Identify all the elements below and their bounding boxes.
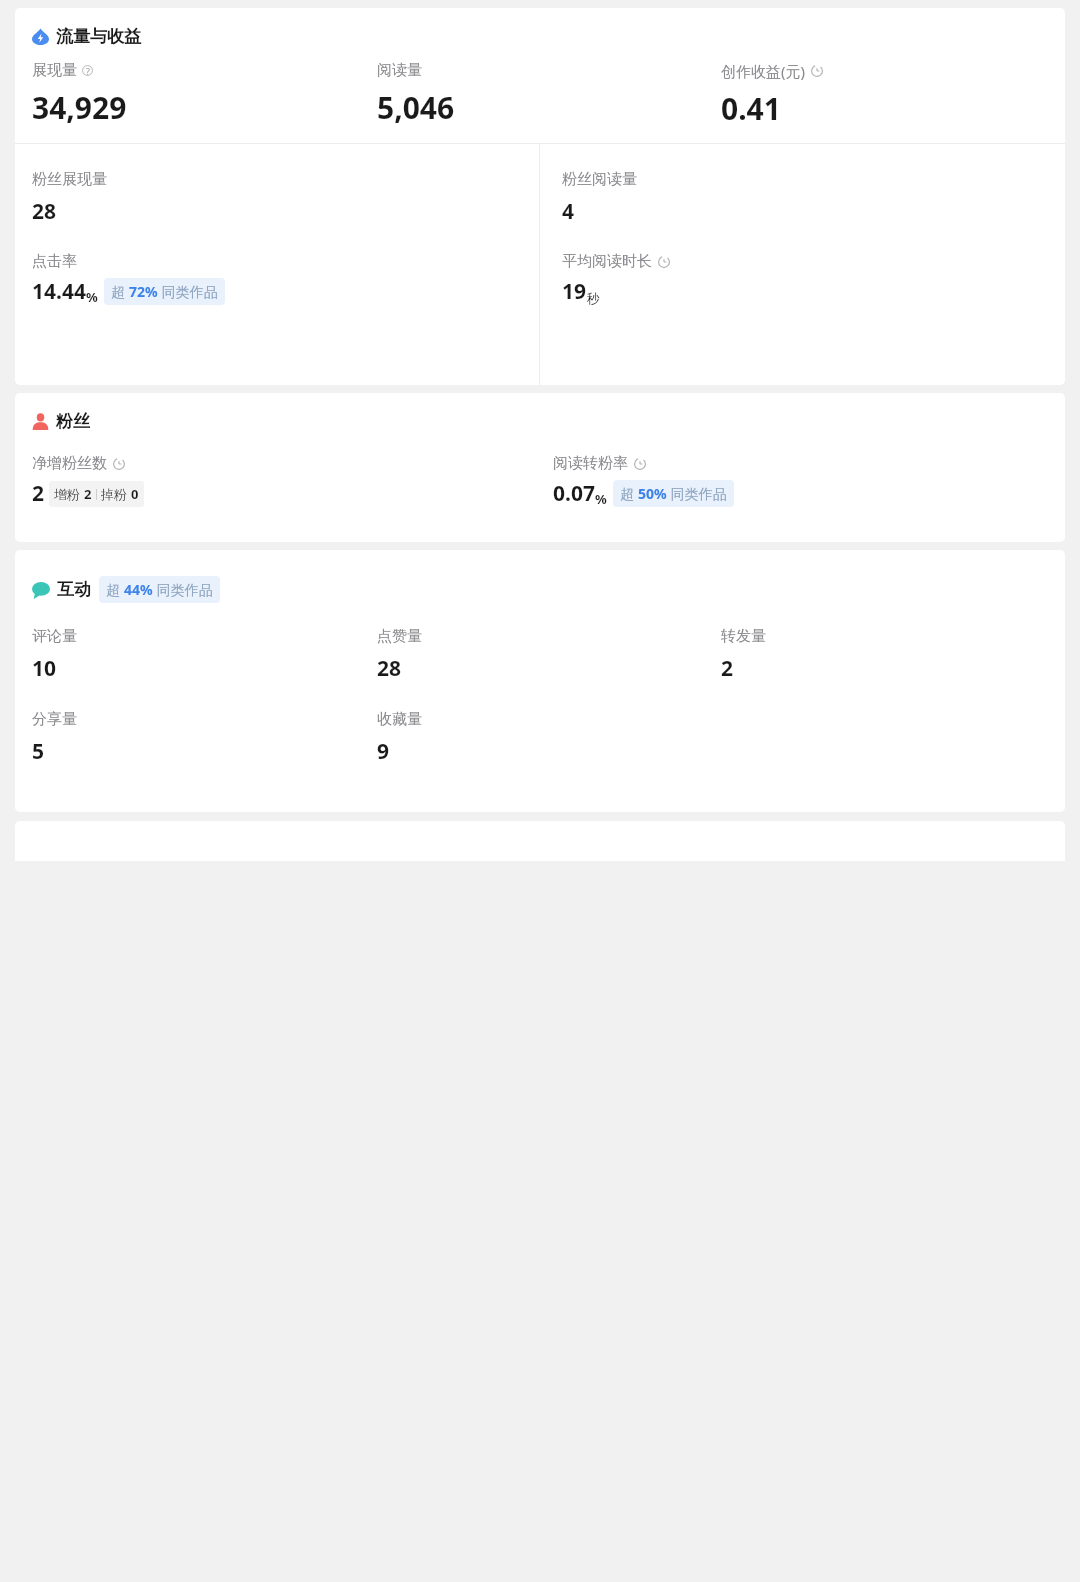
staticText: 5,046 xyxy=(377,87,455,128)
staticText: % xyxy=(86,288,98,306)
staticText: 净增粉丝数 xyxy=(32,454,107,473)
staticText: 粉丝阅读量 xyxy=(562,170,637,189)
staticText: 2 xyxy=(84,485,92,503)
staticText: 10 xyxy=(32,654,57,683)
staticText: 14.44 xyxy=(32,277,86,306)
button[interactable]: 流量 xyxy=(32,26,141,47)
staticText: 阅读转粉率 xyxy=(553,454,628,473)
staticText: 0 xyxy=(131,485,139,503)
staticText: 0.07 xyxy=(553,479,595,508)
staticText: 72% xyxy=(129,282,158,301)
staticText: 点击率 xyxy=(32,252,77,271)
staticText: 34,929 xyxy=(32,87,127,128)
staticText: 互动 xyxy=(57,579,91,600)
staticText: 同类作品 xyxy=(153,580,213,599)
staticText: 4 xyxy=(562,197,575,226)
other: 流量 xyxy=(32,28,49,45)
staticText: 阅读量 xyxy=(377,61,422,80)
staticText: 同类作品 xyxy=(667,484,727,503)
other: 粉丝 xyxy=(32,413,49,430)
staticText: % xyxy=(595,490,607,508)
staticText: 粉丝展现量 xyxy=(32,170,107,189)
other: 互动 xyxy=(32,581,50,599)
button[interactable]: 互动 xyxy=(32,576,220,603)
staticText: 创作收益(元) xyxy=(721,61,806,81)
staticText: 点赞量 xyxy=(377,627,422,646)
staticText: 粉丝 xyxy=(56,411,90,432)
staticText: 平均阅读时长 xyxy=(562,252,652,271)
staticText: 2 xyxy=(721,654,734,683)
staticText: 流量与收益 xyxy=(56,26,141,47)
staticText: 50% xyxy=(638,484,667,503)
staticText: 0.41 xyxy=(721,88,781,129)
staticText: 28 xyxy=(377,654,402,683)
staticText: 分享量 xyxy=(32,710,77,729)
staticText: 超 xyxy=(111,282,129,301)
staticText: 展现量 xyxy=(32,61,77,80)
staticText: 秒 xyxy=(587,290,600,306)
staticText: ? xyxy=(86,65,90,76)
other: 说明 xyxy=(82,65,93,76)
staticText: 掉粉 xyxy=(101,486,127,502)
staticText: 9 xyxy=(377,737,390,766)
staticText: 转发量 xyxy=(721,627,766,646)
staticText: 44% xyxy=(124,580,153,599)
staticText: 评论量 xyxy=(32,627,77,646)
staticText: 同类作品 xyxy=(158,282,218,301)
staticText: 收藏量 xyxy=(377,710,422,729)
staticText: 28 xyxy=(32,197,57,226)
staticText: 19 xyxy=(562,277,587,306)
staticText: 超 xyxy=(620,484,638,503)
staticText: 2 xyxy=(32,479,45,508)
staticText: 超 xyxy=(106,580,124,599)
staticText: 增粉 xyxy=(54,486,80,502)
staticText: 5 xyxy=(32,737,45,766)
button[interactable]: 粉丝 xyxy=(32,411,90,432)
